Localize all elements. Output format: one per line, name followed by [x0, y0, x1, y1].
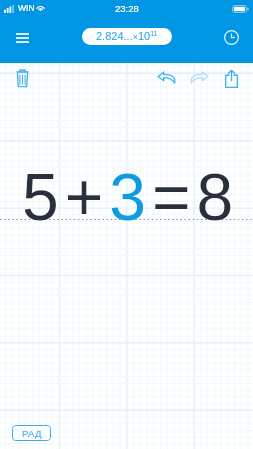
button[interactable]: Undo — [149, 62, 184, 93]
staticText: 23:28 — [115, 3, 139, 14]
button[interactable]: History — [212, 19, 250, 56]
button[interactable]: Menu — [3, 19, 41, 56]
button[interactable]: 2.824...×1011 — [82, 28, 172, 45]
staticText: WIN — [18, 3, 35, 13]
button[interactable]: Redo — [181, 62, 216, 93]
button[interactable]: Delete — [4, 61, 40, 94]
button[interactable]: РАД — [12, 425, 51, 441]
staticText: 5+3=8 — [22, 160, 240, 230]
staticText: 2.824...×1011 — [96, 30, 158, 43]
staticText: РАД — [22, 428, 42, 439]
button[interactable]: Share — [214, 62, 249, 95]
